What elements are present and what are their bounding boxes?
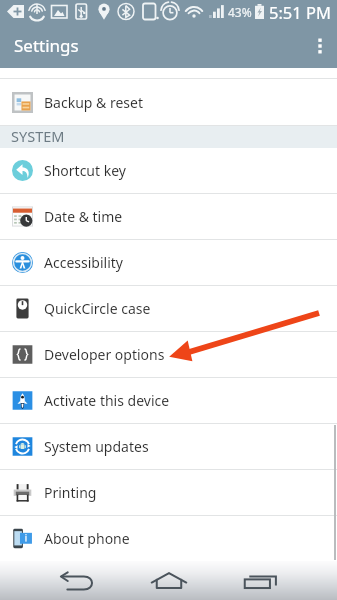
staticText: Settings [14, 34, 79, 57]
staticText: 43% [228, 4, 252, 20]
button[interactable]: Recent apps [225, 561, 295, 600]
staticText: About phone [44, 529, 130, 548]
button[interactable]: Backup & reset [0, 79, 337, 125]
staticText: Shortcut key [44, 161, 126, 180]
staticText: Backup & reset [44, 93, 143, 112]
button[interactable]: Accessibility [0, 240, 337, 285]
staticText: Printing [44, 483, 97, 502]
staticText: QuickCircle case [44, 299, 151, 318]
staticText: Accessibility [44, 253, 123, 272]
button[interactable]: Date & time [0, 194, 337, 239]
button[interactable]: System updates [0, 424, 337, 469]
button[interactable]: About phone [0, 516, 337, 561]
staticText: Activate this device [44, 391, 170, 410]
button[interactable]: Shortcut key [0, 148, 337, 193]
button[interactable]: Developer options [0, 332, 337, 377]
button[interactable]: Activate this device [0, 378, 337, 423]
button[interactable]: Back [41, 561, 111, 600]
staticText: 5:51 PM [269, 1, 331, 23]
button[interactable]: Home [134, 561, 204, 600]
staticText: Date & time [44, 207, 123, 226]
button[interactable]: More options [303, 23, 337, 68]
button[interactable]: Printing [0, 470, 337, 515]
staticText: Developer options [44, 345, 165, 364]
staticText: System updates [44, 437, 149, 456]
button[interactable]: QuickCircle case [0, 286, 337, 331]
staticText: SYSTEM [11, 126, 65, 146]
